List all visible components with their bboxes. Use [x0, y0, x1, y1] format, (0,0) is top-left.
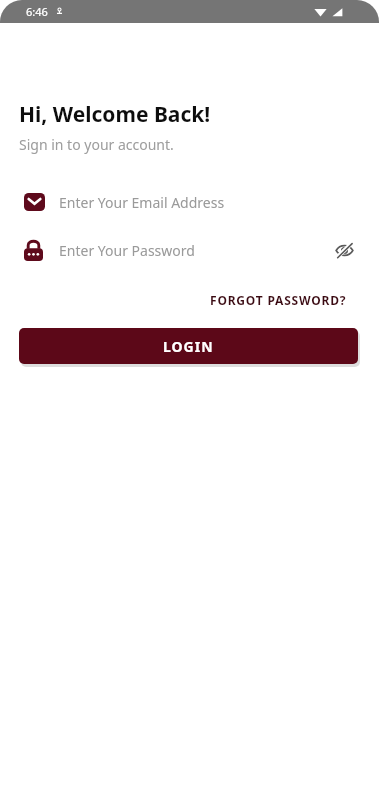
staticText: Sign in to your account. — [19, 135, 174, 154]
other: Email — [24, 193, 45, 211]
button[interactable]: Email — [0, 182, 379, 222]
staticText: Enter Your Email Address — [59, 193, 225, 212]
button[interactable]: Show password — [329, 235, 359, 265]
button[interactable]: LOGIN — [19, 328, 358, 364]
staticText: Enter Your Password — [59, 241, 195, 260]
button[interactable]: FORGOT PASSWORD? — [204, 288, 353, 312]
staticText: Hi, Welcome Back! — [19, 100, 211, 129]
staticText: LOGIN — [163, 337, 214, 356]
staticText: FORGOT PASSWORD? — [210, 292, 347, 308]
staticText: 6:46 — [26, 4, 48, 19]
other: Password — [24, 239, 43, 261]
button[interactable]: Password — [0, 230, 379, 270]
